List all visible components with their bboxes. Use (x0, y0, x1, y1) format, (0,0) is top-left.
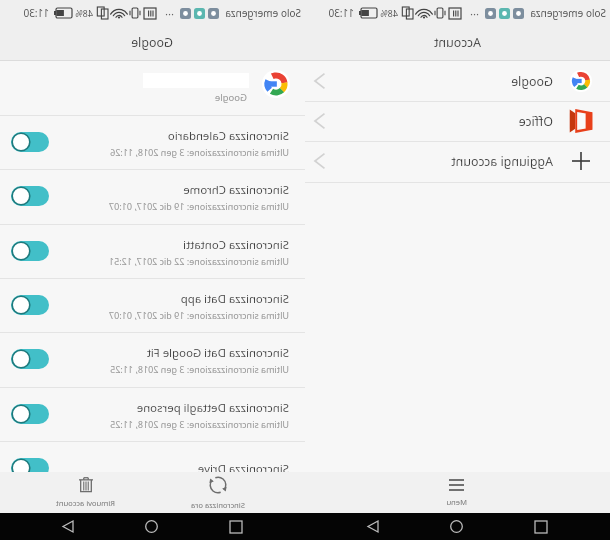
button[interactable]: Office (305, 101, 610, 141)
button[interactable]: Home (137, 513, 167, 540)
button[interactable]: Google (0, 61, 305, 115)
button[interactable]: Toggle sync (11, 241, 49, 261)
button[interactable]: Toggle sync (11, 458, 49, 478)
button[interactable]: Toggle sync (11, 295, 49, 315)
staticText: Sincronizza Drive (197, 461, 289, 477)
staticText: Sincronizza Dati Google Fit (146, 345, 289, 361)
button[interactable]: Sincronizza Dati Google Fit (0, 332, 305, 386)
staticText: Sincronizza Chrome (183, 182, 289, 198)
staticText: Sincronizza ora (191, 500, 245, 510)
staticText: Menu (446, 497, 467, 507)
button[interactable]: Toggle sync (11, 349, 49, 369)
staticText: Account (433, 34, 481, 51)
staticText: Ultima sincronizzazione: 3 gen 2018, 11:… (110, 418, 289, 430)
button[interactable]: Rimuovi account (20, 472, 152, 513)
staticText: 11:30 (23, 6, 49, 20)
staticText: Google (131, 34, 173, 51)
staticText: Solo emergenza (225, 6, 301, 20)
button[interactable]: Sincronizza Drive (0, 441, 305, 495)
staticText: ··· (165, 6, 174, 21)
button[interactable]: Menu (391, 472, 523, 513)
button[interactable]: Sincronizza Chrome (0, 169, 305, 223)
button[interactable]: Sincronizza Dati app (0, 278, 305, 332)
staticText: Ultima sincronizzazione: 22 dic 2017, 12… (108, 255, 289, 267)
staticText: Sincronizza Contatti (183, 237, 289, 253)
button[interactable]: Google (305, 61, 610, 101)
button[interactable]: Sincronizza Contatti (0, 224, 305, 278)
button[interactable]: Aggiungi account (305, 141, 610, 181)
staticText: Office (327, 113, 553, 130)
staticText: Sincronizza Calendario (167, 128, 289, 144)
staticText: Ultima sincronizzazione: 19 dic 2017, 01… (108, 309, 289, 321)
staticText: Google (214, 91, 247, 104)
button[interactable]: Home (442, 513, 472, 540)
button[interactable]: Back (54, 513, 84, 540)
button[interactable]: Sincronizza Dettagli persone (0, 387, 305, 441)
button[interactable]: Sincronizza ora (152, 472, 284, 513)
button[interactable]: Sincronizza Calendario (0, 115, 305, 169)
staticText: Aggiungi account (327, 153, 553, 170)
staticText: Sincronizza Dati app (180, 291, 289, 307)
button[interactable]: Recents (526, 513, 556, 540)
staticText: Rimuovi account (56, 498, 115, 508)
button[interactable]: Recents (221, 513, 251, 540)
staticText: Sincronizza Dettagli persone (136, 400, 289, 416)
button[interactable]: Back (359, 513, 389, 540)
staticText: 11:30 (328, 6, 354, 20)
staticText: 48% (380, 7, 398, 19)
staticText: 48% (75, 7, 93, 19)
staticText: ··· (470, 6, 479, 21)
staticText: Google (327, 73, 553, 90)
staticText: Solo emergenza (530, 6, 606, 20)
button[interactable]: Toggle sync (11, 132, 49, 152)
staticText: Ultima sincronizzazione: 3 gen 2018, 11:… (110, 363, 289, 375)
staticText: Ultima sincronizzazione: 19 dic 2017, 01… (108, 200, 289, 212)
button[interactable]: Toggle sync (11, 404, 49, 424)
staticText: Ultima sincronizzazione: 3 gen 2018, 11:… (110, 146, 289, 158)
button[interactable]: Toggle sync (11, 186, 49, 206)
